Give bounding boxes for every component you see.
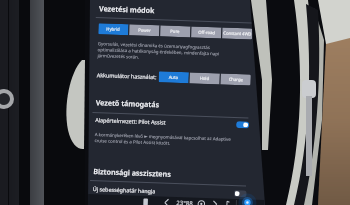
button[interactable]: Off-road (191, 26, 221, 38)
staticText: Auto (169, 75, 179, 81)
staticText: Charge (229, 77, 244, 83)
button[interactable]: Constant 4WD (222, 27, 252, 39)
staticText: Pure (170, 29, 180, 35)
button[interactable]: Új sebességhatár hangja (93, 183, 247, 199)
button[interactable]: Hybrid (98, 23, 129, 35)
staticText: Vezető támogatás (96, 97, 160, 109)
button[interactable]: Power (129, 24, 160, 36)
staticText: Hold (200, 76, 210, 82)
staticText: 23°88 (176, 199, 193, 205)
staticText: Alapértelmezett: Pilot Assist (95, 116, 166, 126)
staticText: Constant 4WD (223, 30, 252, 37)
staticText: Power (138, 28, 151, 34)
button[interactable]: Alapértelmezett: Pilot Assist (95, 114, 249, 130)
staticText: Új sebességhatár hangja (93, 185, 156, 194)
button[interactable]: Auto (159, 71, 189, 83)
staticText: Gyorsulás, vezetési dinamika és üzemanya… (97, 40, 220, 62)
staticText: A kormánykeréken lévő ► megnyomásával ka… (94, 131, 232, 148)
button[interactable]: Charge (220, 73, 251, 85)
staticText: Off-road (198, 30, 215, 36)
staticText: Vezetési módok (99, 3, 155, 15)
staticText: Biztonsági asszisztens (93, 166, 171, 179)
button[interactable]: Hold (189, 72, 220, 84)
staticText: Hybrid (106, 26, 120, 33)
button[interactable]: Pure (160, 25, 191, 37)
staticText: Akkumulátor használat: (97, 71, 157, 80)
